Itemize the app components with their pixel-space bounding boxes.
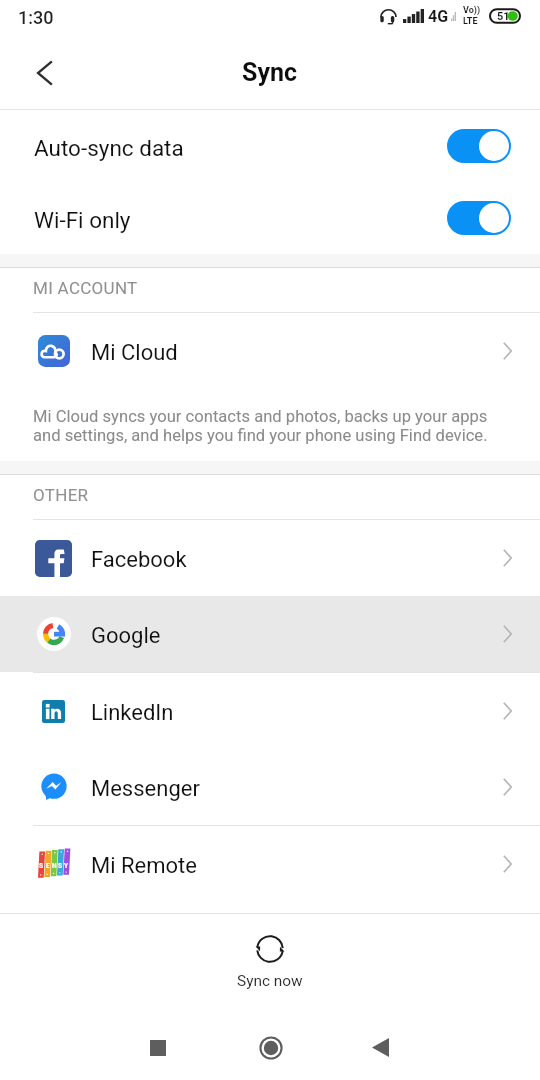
staticText: Mi Cloud bbox=[91, 340, 178, 366]
button[interactable]: Messenger bbox=[0, 749, 540, 825]
button[interactable]: Facebook bbox=[0, 520, 540, 596]
staticText: LTE bbox=[463, 16, 478, 27]
staticText: Sync now bbox=[237, 972, 303, 990]
staticText: Auto-sync data bbox=[34, 135, 184, 161]
staticText: Vo)) bbox=[463, 5, 481, 16]
button[interactable]: Auto-sync data bbox=[0, 110, 540, 182]
staticText: Mi Remote bbox=[91, 853, 197, 879]
staticText: 4G bbox=[428, 7, 449, 26]
button[interactable]: Mi Cloud bbox=[0, 313, 540, 389]
staticText: Messenger bbox=[91, 776, 200, 802]
staticText: Wi-Fi only bbox=[34, 207, 131, 233]
button[interactable]: Sync now bbox=[0, 914, 540, 1002]
staticText: MI ACCOUNT bbox=[33, 278, 138, 298]
button[interactable]: Back bbox=[0, 36, 64, 109]
staticText: Mi Cloud syncs your contacts and photos,… bbox=[33, 407, 488, 445]
staticText: OTHER bbox=[33, 485, 89, 505]
staticText: S bbox=[58, 862, 63, 870]
button[interactable]: Home bbox=[243, 1020, 298, 1075]
staticText: E bbox=[46, 862, 50, 870]
button[interactable]: Back bbox=[353, 1020, 408, 1075]
button[interactable]: LinkedIn bbox=[0, 673, 540, 749]
staticText: 51 bbox=[497, 10, 510, 23]
staticText: S bbox=[39, 862, 44, 870]
staticText: 1:30 bbox=[18, 7, 54, 28]
button[interactable]: Google bbox=[0, 596, 540, 672]
staticText: Y bbox=[64, 862, 69, 870]
staticText: Facebook bbox=[91, 547, 187, 573]
staticText: Sync bbox=[242, 58, 298, 87]
staticText: N bbox=[52, 862, 57, 870]
button[interactable]: Wi-Fi only bbox=[0, 182, 540, 254]
button[interactable]: S bbox=[0, 826, 540, 902]
staticText: LinkedIn bbox=[91, 700, 174, 726]
button[interactable]: Recents bbox=[130, 1020, 185, 1075]
staticText: Google bbox=[91, 623, 161, 649]
